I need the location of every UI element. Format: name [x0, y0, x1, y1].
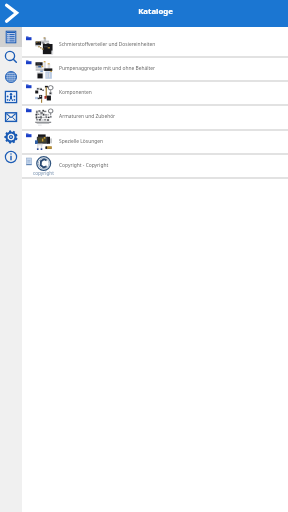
staticText: Armaturen und Zubehör — [59, 113, 116, 120]
staticText: Schmierstoffverteiler und Dosiereinheite… — [59, 41, 156, 48]
button[interactable]: Pumpenaggregate mit und ohne Behälter — [22, 58, 288, 82]
button[interactable]: Catalogs — [0, 27, 22, 47]
staticText: Spezielle Lösungen — [59, 138, 103, 145]
staticText: Komponenten — [59, 89, 92, 96]
button[interactable]: Komponenten — [22, 82, 288, 106]
button[interactable]: Settings — [0, 127, 22, 147]
staticText: Pumpenaggregate mit und ohne Behälter — [59, 65, 156, 72]
button[interactable]: Search — [0, 47, 22, 67]
button[interactable]: Schmierstoffverteiler und Dosiereinheite… — [22, 34, 288, 58]
button[interactable]: Open navigation drawer — [0, 0, 24, 24]
staticText: Copyright - Copyright — [59, 162, 109, 169]
staticText: copyright — [33, 170, 54, 176]
button[interactable]: Company — [0, 87, 22, 107]
button[interactable]: Info — [0, 147, 22, 167]
button[interactable]: Web — [0, 67, 22, 87]
button[interactable]: Spezielle Lösungen — [22, 131, 288, 155]
staticText: Kataloge — [138, 6, 173, 17]
button[interactable]: copyright — [22, 155, 288, 179]
button[interactable]: Mail — [0, 107, 22, 127]
button[interactable]: Armaturen und Zubehör — [22, 106, 288, 131]
